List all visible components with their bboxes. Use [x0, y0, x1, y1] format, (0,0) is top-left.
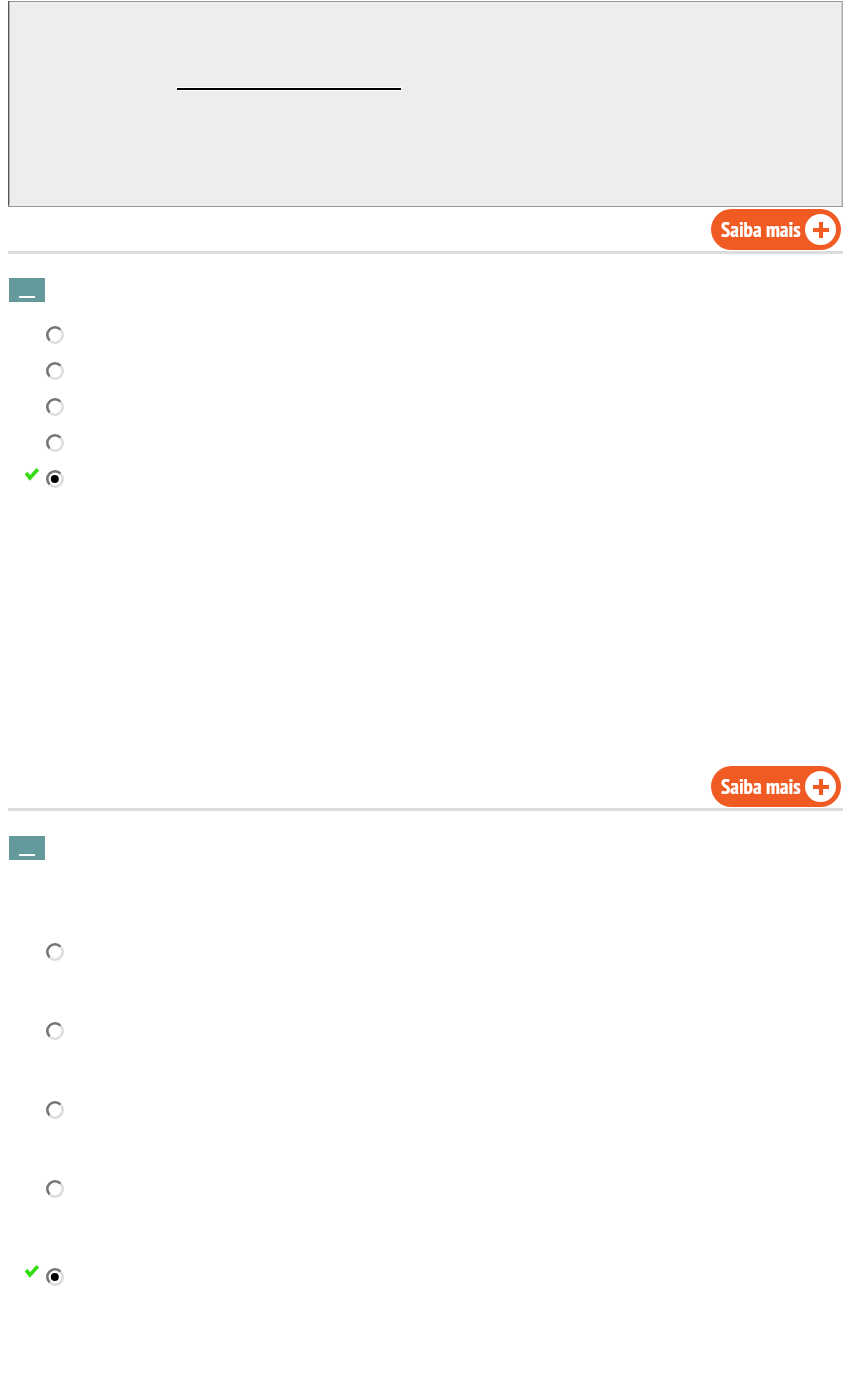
button[interactable]: Answer option — [46, 1180, 64, 1198]
button[interactable]: Question illustration — [8, 1, 843, 207]
button[interactable]: Answer option — [46, 1101, 64, 1119]
button[interactable]: Question label — [9, 836, 45, 860]
staticText: Saiba mais — [721, 773, 801, 800]
button[interactable]: Answer option — [46, 943, 64, 961]
button[interactable]: Answer option — [46, 1022, 64, 1040]
button[interactable]: Question label — [9, 278, 45, 302]
button[interactable]: Answer option — [46, 398, 64, 416]
button[interactable]: Selected answer — [46, 470, 64, 488]
button[interactable]: Answer option — [46, 434, 64, 452]
button[interactable]: Saiba mais — [711, 766, 841, 807]
button[interactable]: Saiba mais — [711, 209, 841, 250]
button[interactable]: Answer option — [46, 362, 64, 380]
button[interactable]: Answer option — [46, 326, 64, 344]
staticText: Saiba mais — [721, 216, 801, 243]
button[interactable]: Selected answer — [46, 1268, 64, 1286]
